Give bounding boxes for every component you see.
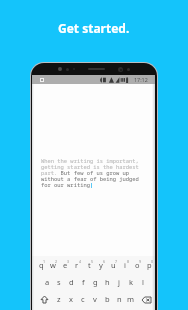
- staticText: 5: [91, 259, 94, 264]
- button[interactable]: h: [101, 273, 113, 290]
- button[interactable]: m: [125, 290, 137, 307]
- button[interactable]: c: [77, 290, 89, 307]
- button[interactable]: z: [53, 290, 65, 307]
- staticText: f: [82, 277, 85, 287]
- staticText: y: [99, 260, 103, 270]
- staticText: x: [69, 294, 73, 304]
- staticText: s: [57, 277, 61, 287]
- button[interactable]: u: [107, 256, 119, 273]
- button[interactable]: Get started.: [0, 0, 188, 55]
- staticText: When the writing is important, getting s…: [41, 157, 139, 188]
- staticText: w: [50, 260, 56, 270]
- button[interactable]: s: [53, 273, 65, 290]
- button[interactable]: v: [89, 290, 101, 307]
- staticText: m: [127, 294, 135, 304]
- button[interactable]: p: [143, 256, 155, 273]
- staticText: z: [57, 294, 61, 304]
- staticText: Get started.: [58, 20, 130, 36]
- staticText: r: [75, 260, 79, 270]
- button[interactable]: y: [95, 256, 107, 273]
- button[interactable]: x: [65, 290, 77, 307]
- staticText: u: [111, 260, 116, 270]
- button[interactable]: a: [41, 273, 53, 290]
- button[interactable]: e: [59, 256, 71, 273]
- staticText: l: [142, 277, 144, 287]
- staticText: 17:12: [134, 76, 148, 83]
- button[interactable]: t: [83, 256, 95, 273]
- button[interactable]: r: [71, 256, 83, 273]
- button[interactable]: Shift: [36, 290, 53, 307]
- staticText: i: [124, 260, 126, 270]
- staticText: 2: [55, 259, 58, 264]
- button[interactable]: w: [47, 256, 59, 273]
- staticText: 1: [43, 259, 46, 264]
- staticText: 9: [139, 259, 142, 264]
- staticText: p: [147, 260, 152, 270]
- button[interactable]: b: [101, 290, 113, 307]
- staticText: g: [93, 277, 98, 287]
- staticText: 0: [151, 259, 154, 264]
- staticText: b: [105, 294, 110, 304]
- staticText: t: [88, 260, 91, 270]
- staticText: q: [39, 260, 44, 270]
- staticText: d: [69, 277, 74, 287]
- button[interactable]: n: [113, 290, 125, 307]
- button[interactable]: o: [131, 256, 143, 273]
- staticText: 7: [115, 259, 118, 264]
- button[interactable]: g: [89, 273, 101, 290]
- staticText: h: [105, 277, 110, 287]
- staticText: 6: [103, 259, 106, 264]
- staticText: e: [63, 260, 68, 270]
- staticText: 4: [79, 259, 82, 264]
- staticText: k: [129, 277, 134, 287]
- button[interactable]: f: [77, 273, 89, 290]
- staticText: j: [118, 277, 120, 287]
- staticText: o: [135, 260, 140, 270]
- button[interactable]: d: [65, 273, 77, 290]
- button[interactable]: k: [125, 273, 137, 290]
- button[interactable]: Backspace: [137, 290, 155, 307]
- button[interactable]: j: [113, 273, 125, 290]
- staticText: 8: [127, 259, 130, 264]
- staticText: n: [117, 294, 122, 304]
- button[interactable]: i: [119, 256, 131, 273]
- staticText: a: [45, 277, 50, 287]
- staticText: 3: [67, 259, 70, 264]
- staticText: c: [81, 294, 85, 304]
- button[interactable]: q: [36, 256, 47, 273]
- staticText: v: [93, 294, 97, 304]
- button[interactable]: l: [137, 273, 149, 290]
